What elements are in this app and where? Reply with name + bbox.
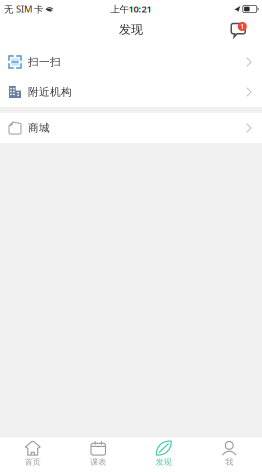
staticText: 上午10:21 — [110, 3, 151, 15]
staticText: 我 — [225, 457, 233, 467]
staticText: 课表 — [90, 457, 106, 467]
button[interactable]: 发现 — [131, 436, 196, 472]
staticText: 发现 — [119, 22, 143, 37]
button[interactable]: 课表 — [65, 436, 131, 472]
button[interactable]: 商城 — [0, 113, 262, 143]
button[interactable]: 附近机构 — [0, 77, 262, 107]
staticText: 无 SIM 卡 — [4, 3, 43, 15]
staticText: 附近机构 — [28, 85, 72, 98]
staticText: 发现 — [156, 457, 172, 467]
button[interactable]: 扫一扫 — [0, 47, 262, 77]
staticText: 扫一扫 — [28, 55, 61, 68]
staticText: 首页 — [25, 457, 41, 467]
staticText: 商城 — [28, 121, 50, 134]
button[interactable]: 消息 — [228, 19, 250, 45]
button[interactable]: 首页 — [0, 436, 65, 472]
staticText: 1 — [240, 22, 244, 31]
button[interactable]: 我 — [196, 436, 262, 472]
